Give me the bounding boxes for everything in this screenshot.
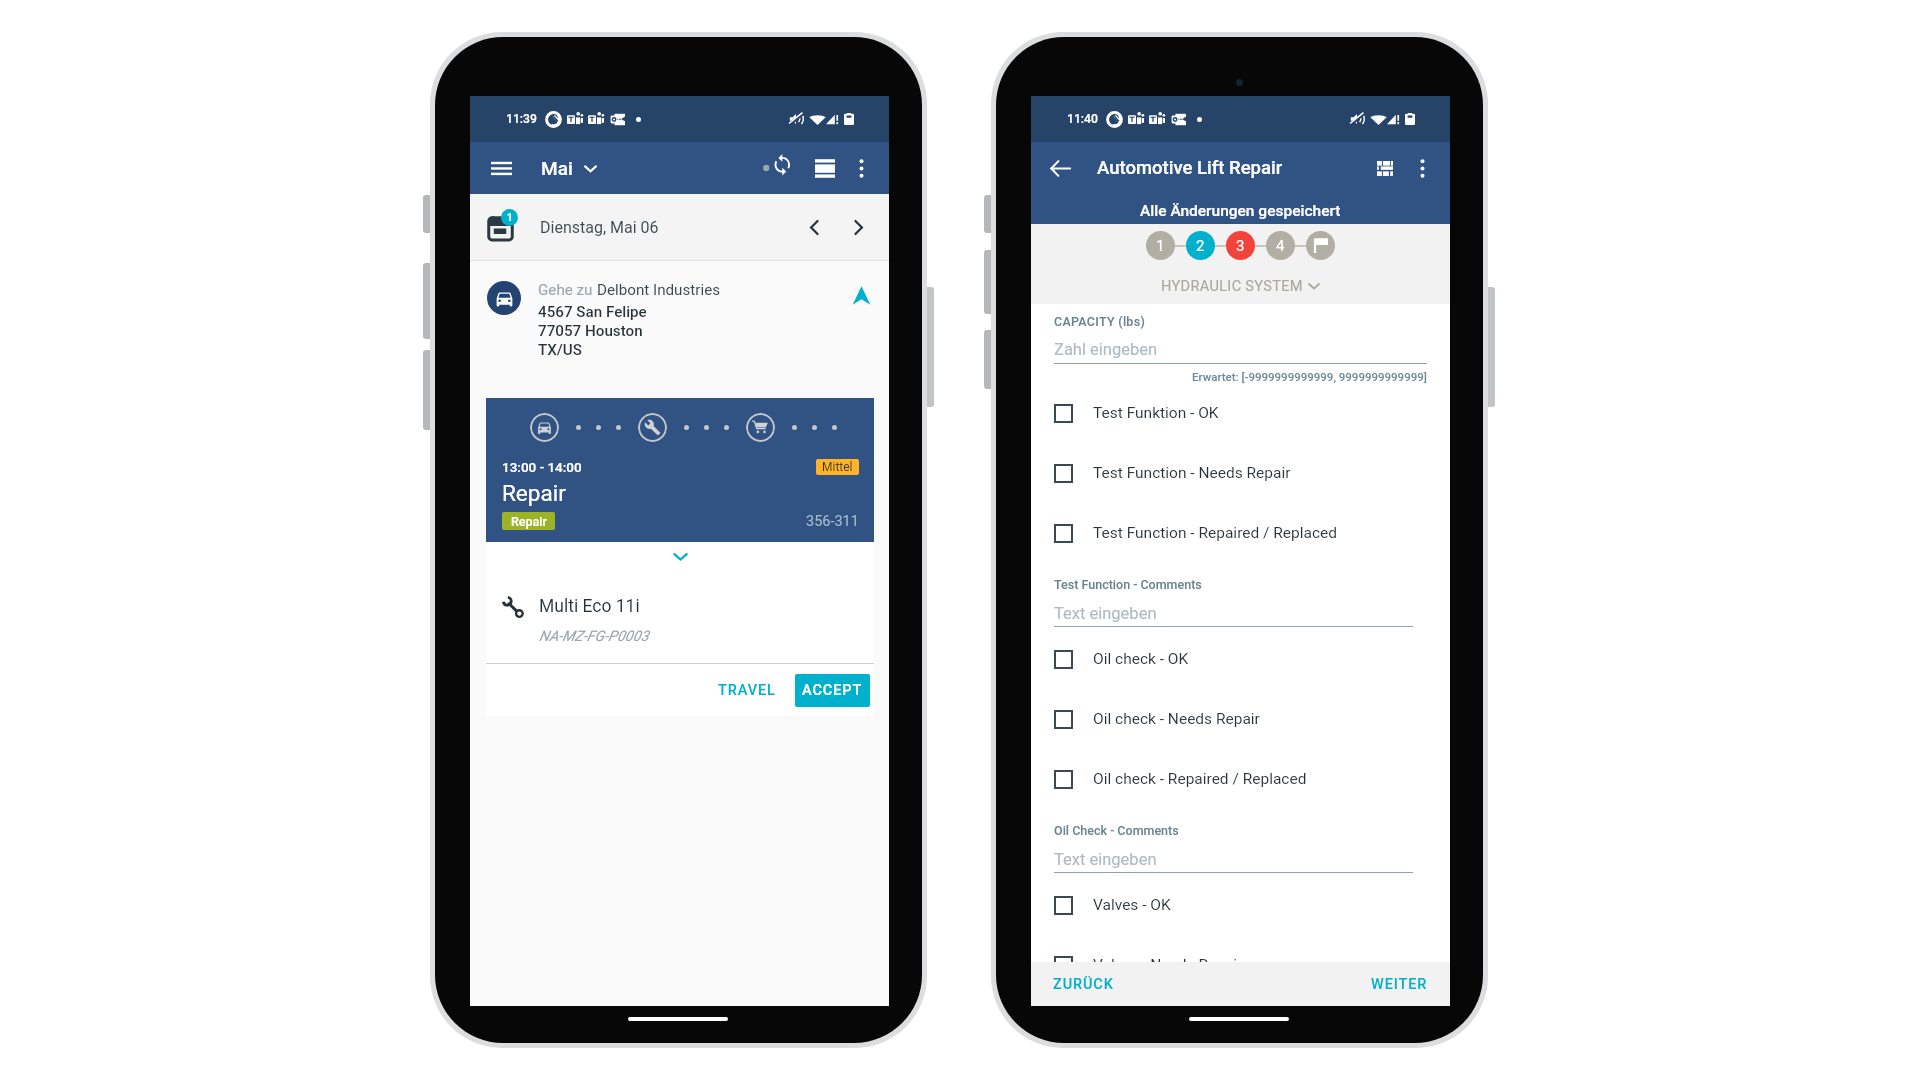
button[interactable]: Finish bbox=[1306, 231, 1335, 260]
button[interactable]: 1 bbox=[470, 194, 889, 260]
button[interactable]: Previous day bbox=[797, 210, 831, 244]
button[interactable]: ZURÜCK bbox=[1042, 967, 1125, 1002]
staticText: ZURÜCK bbox=[1053, 976, 1114, 993]
staticText: 2 bbox=[1196, 237, 1205, 255]
staticText: Delbont Industries bbox=[597, 281, 721, 299]
staticText: Mai bbox=[541, 157, 573, 179]
button[interactable]: View mode bbox=[807, 150, 843, 186]
staticText: Zahl eingeben bbox=[1054, 340, 1158, 359]
staticText: Dienstag, Mai 06 bbox=[540, 218, 659, 237]
button[interactable]: 4 bbox=[1266, 231, 1295, 260]
staticText: Test Function - Repaired / Replaced bbox=[1093, 524, 1338, 542]
staticText: Test Funktion - OK bbox=[1093, 404, 1219, 422]
button[interactable]: Oil Check - Comments bbox=[1031, 809, 1450, 875]
staticText: TRAVEL bbox=[718, 682, 776, 699]
button[interactable]: Test Function - Comments bbox=[1031, 563, 1450, 629]
button[interactable]: Expand bbox=[486, 542, 874, 571]
button[interactable]: 2 bbox=[1186, 231, 1215, 260]
staticText: Oil check - OK bbox=[1093, 650, 1189, 668]
staticText: Valves - Needs Repair bbox=[1093, 956, 1243, 962]
staticText: Oil check - Repaired / Replaced bbox=[1093, 770, 1307, 788]
button[interactable]: Test Funktion - OK bbox=[1031, 383, 1450, 443]
button[interactable]: Valves - Needs Repair bbox=[1031, 935, 1450, 962]
button[interactable]: 1 bbox=[1146, 231, 1175, 260]
button[interactable]: Zahl eingeben bbox=[1031, 340, 1450, 364]
button[interactable]: Oil check - Repaired / Replaced bbox=[1031, 749, 1450, 809]
staticText: Multi Eco 11i bbox=[539, 596, 640, 617]
staticText: 4567 San Felipe bbox=[538, 303, 647, 321]
button[interactable]: 3 bbox=[1226, 231, 1255, 260]
staticText: HYDRAULIC SYSTEM bbox=[1161, 277, 1303, 294]
staticText: TX/US bbox=[538, 341, 582, 359]
button[interactable]: 13:00 - 14:00 bbox=[486, 398, 874, 542]
staticText: 1 bbox=[507, 212, 513, 224]
staticText: Test Function - Comments bbox=[1054, 577, 1202, 592]
button[interactable]: Sync bbox=[760, 149, 798, 187]
staticText: 11:40 bbox=[1067, 112, 1098, 126]
staticText: Repair bbox=[511, 514, 547, 529]
button[interactable]: Gehe zu bbox=[470, 261, 889, 398]
button[interactable]: Test Function - Needs Repair bbox=[1031, 443, 1450, 503]
staticText: 1 bbox=[1156, 237, 1165, 255]
staticText: Oil Check - Comments bbox=[1054, 823, 1179, 838]
staticText: 4 bbox=[1276, 237, 1285, 255]
button[interactable]: Layout bbox=[1366, 149, 1404, 187]
button[interactable]: TRAVEL bbox=[705, 673, 789, 708]
staticText: Mittel bbox=[822, 460, 853, 474]
staticText: 356-311 bbox=[806, 513, 859, 530]
staticText: Test Function - Needs Repair bbox=[1093, 464, 1291, 482]
button[interactable]: Navigate bbox=[847, 281, 875, 309]
button[interactable]: More options bbox=[845, 152, 877, 184]
button[interactable]: HYDRAULIC SYSTEM bbox=[1161, 277, 1321, 294]
staticText: Text eingeben bbox=[1054, 604, 1157, 623]
staticText: Alle Änderungen gespeichert bbox=[1140, 202, 1341, 220]
button[interactable]: Oil check - OK bbox=[1031, 629, 1450, 689]
staticText: 77057 Houston bbox=[538, 322, 643, 340]
button[interactable]: ACCEPT bbox=[795, 674, 870, 707]
button[interactable]: Back bbox=[1047, 155, 1073, 181]
staticText: Valves - OK bbox=[1093, 896, 1171, 914]
button[interactable]: Mai bbox=[541, 157, 598, 179]
staticText: Gehe zu bbox=[538, 281, 597, 299]
button[interactable]: Menu bbox=[486, 153, 516, 183]
staticText: Text eingeben bbox=[1054, 850, 1157, 869]
staticText: Erwartet: [-9999999999999, 9999999999999… bbox=[1192, 370, 1427, 383]
staticText: Automotive Lift Repair bbox=[1097, 157, 1283, 179]
staticText: CAPACITY (lbs) bbox=[1054, 314, 1146, 329]
staticText: Repair bbox=[502, 480, 566, 506]
staticText: 13:00 - 14:00 bbox=[502, 459, 582, 475]
staticText: ACCEPT bbox=[802, 682, 863, 699]
staticText: Oil check - Needs Repair bbox=[1093, 710, 1260, 728]
button[interactable]: WEITER bbox=[1360, 967, 1439, 1002]
staticText: NA-MZ-FG-P0003 bbox=[539, 628, 649, 645]
staticText: WEITER bbox=[1371, 976, 1428, 993]
button[interactable]: Valves - OK bbox=[1031, 875, 1450, 935]
button[interactable]: Next day bbox=[841, 210, 875, 244]
staticText: 11:39 bbox=[506, 112, 537, 126]
staticText: 3 bbox=[1236, 237, 1245, 255]
button[interactable]: Test Function - Repaired / Replaced bbox=[1031, 503, 1450, 563]
button[interactable]: Oil check - Needs Repair bbox=[1031, 689, 1450, 749]
button[interactable]: More options bbox=[1406, 152, 1438, 184]
